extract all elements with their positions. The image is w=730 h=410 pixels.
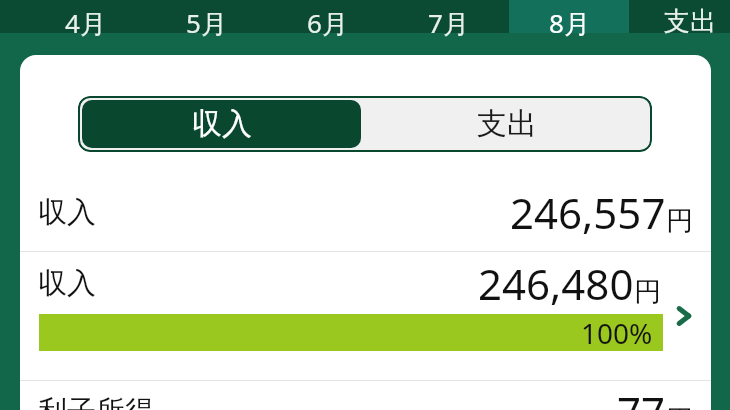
staticText: 100% bbox=[581, 314, 653, 351]
staticText: 支出 bbox=[664, 5, 716, 38]
staticText: 8月 bbox=[549, 5, 590, 38]
button[interactable]: 詳細を表示 bbox=[667, 299, 701, 333]
staticText: 246,557 bbox=[510, 184, 666, 241]
button[interactable]: 利子所得 bbox=[20, 381, 711, 410]
button[interactable]: 4月 bbox=[25, 0, 145, 33]
staticText: 77 bbox=[617, 383, 666, 410]
button[interactable]: 支出 bbox=[365, 96, 648, 152]
button[interactable]: 収入 bbox=[20, 173, 711, 251]
staticText: 6月 bbox=[307, 5, 348, 38]
button[interactable]: 8月 bbox=[509, 0, 629, 33]
staticText: 7月 bbox=[428, 5, 469, 38]
staticText: 5月 bbox=[186, 5, 227, 38]
staticText: 利子所得 bbox=[38, 393, 154, 410]
staticText: 246,480 bbox=[478, 255, 634, 312]
button[interactable]: 収入 bbox=[82, 100, 361, 148]
button[interactable]: 6月 bbox=[267, 0, 387, 33]
staticText: 円 bbox=[666, 403, 693, 410]
staticText: 収入 bbox=[192, 105, 252, 143]
button[interactable]: 5月 bbox=[146, 0, 266, 33]
staticText: 収入 bbox=[38, 194, 96, 231]
staticText: 円 bbox=[634, 275, 661, 309]
button[interactable]: 支出 bbox=[630, 0, 730, 33]
staticText: 収入 bbox=[38, 265, 96, 302]
button[interactable]: 7月 bbox=[388, 0, 508, 33]
staticText: 4月 bbox=[65, 5, 106, 38]
button[interactable]: 収入 bbox=[20, 252, 711, 380]
staticText: 円 bbox=[666, 204, 693, 238]
staticText: 支出 bbox=[477, 105, 537, 143]
